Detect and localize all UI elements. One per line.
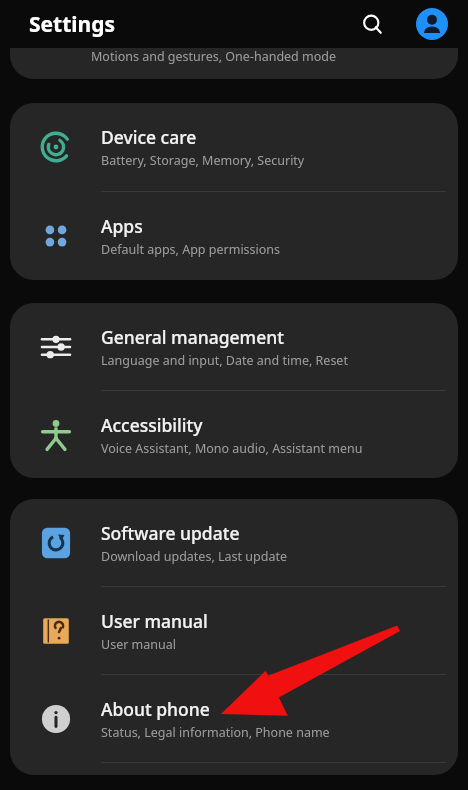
staticText: Settings — [29, 10, 116, 39]
staticText: About phone — [101, 697, 210, 721]
staticText: Device care — [101, 125, 197, 149]
button[interactable]: Device care — [10, 103, 458, 191]
staticText: Motions and gestures, One-handed mode — [91, 48, 337, 65]
button[interactable]: Account — [412, 4, 452, 44]
staticText: Default apps, App permissions — [101, 241, 281, 258]
staticText: Voice Assistant, Mono audio, Assistant m… — [101, 440, 363, 457]
button[interactable]: About phone — [10, 675, 458, 762]
staticText: General management — [101, 325, 284, 349]
button[interactable]: General management — [10, 303, 458, 390]
staticText: User manual — [101, 636, 176, 653]
staticText: Status, Legal information, Phone name — [101, 724, 330, 741]
staticText: Apps — [101, 214, 143, 238]
staticText: User manual — [101, 609, 208, 633]
staticText: Language and input, Date and time, Reset — [101, 352, 348, 369]
staticText: Download updates, Last update — [101, 548, 287, 565]
staticText: Accessibility — [101, 413, 203, 437]
button[interactable]: Motions and gestures, One-handed mode — [10, 48, 458, 79]
button[interactable]: Search — [353, 5, 391, 43]
button[interactable]: Apps — [10, 192, 458, 280]
button[interactable]: User manual — [10, 587, 458, 674]
staticText: Battery, Storage, Memory, Security — [101, 152, 305, 169]
staticText: Software update — [101, 521, 240, 545]
button[interactable]: Accessibility — [10, 391, 458, 478]
button[interactable]: Software update — [10, 499, 458, 586]
